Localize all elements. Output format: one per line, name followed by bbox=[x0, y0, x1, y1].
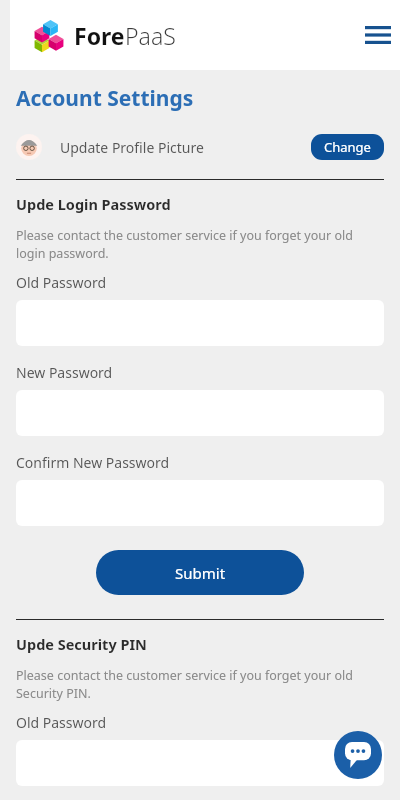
staticText: Old Password bbox=[16, 713, 107, 732]
staticText: Account Settings bbox=[16, 84, 194, 113]
button[interactable]: Update Profile Picture bbox=[0, 127, 400, 167]
button[interactable]: Change bbox=[311, 134, 384, 160]
staticText: Fore bbox=[74, 20, 125, 51]
staticText: Change bbox=[324, 138, 371, 156]
button[interactable]: Menu bbox=[356, 13, 400, 57]
staticText: Submit bbox=[175, 563, 226, 583]
staticText: Please contact the customer service if y… bbox=[16, 227, 384, 262]
staticText: Please contact the customer service if y… bbox=[16, 667, 384, 702]
staticText: Update Profile Picture bbox=[60, 138, 204, 157]
staticText: New Password bbox=[16, 363, 113, 382]
button[interactable]: Chat support bbox=[334, 731, 382, 779]
button[interactable] bbox=[16, 740, 384, 786]
button[interactable]: Submit bbox=[96, 550, 304, 595]
staticText: PaaS bbox=[125, 20, 176, 51]
staticText: Old Password bbox=[16, 273, 107, 292]
staticText: Upde Security PIN bbox=[16, 634, 147, 654]
staticText: Upde Login Password bbox=[16, 194, 171, 214]
staticText: Confirm New Password bbox=[16, 453, 170, 472]
